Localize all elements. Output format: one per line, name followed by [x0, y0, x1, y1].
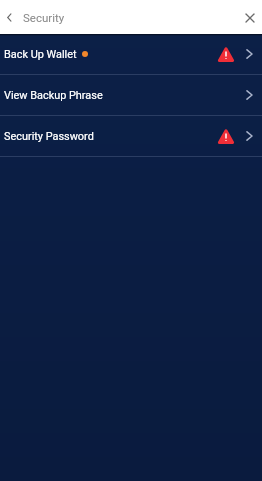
button[interactable]: Back Up Wallet [0, 34, 262, 74]
staticText: Security Password [4, 130, 94, 143]
staticText: Security [23, 11, 65, 24]
button[interactable]: Back [0, 0, 18, 34]
button[interactable]: Close [238, 0, 262, 34]
button[interactable]: View Backup Phrase [0, 75, 262, 115]
other: Warning [218, 46, 234, 62]
staticText: Back Up Wallet [4, 48, 77, 61]
staticText: View Backup Phrase [4, 89, 103, 102]
other: Warning [218, 128, 234, 144]
button[interactable]: Security Password [0, 116, 262, 156]
